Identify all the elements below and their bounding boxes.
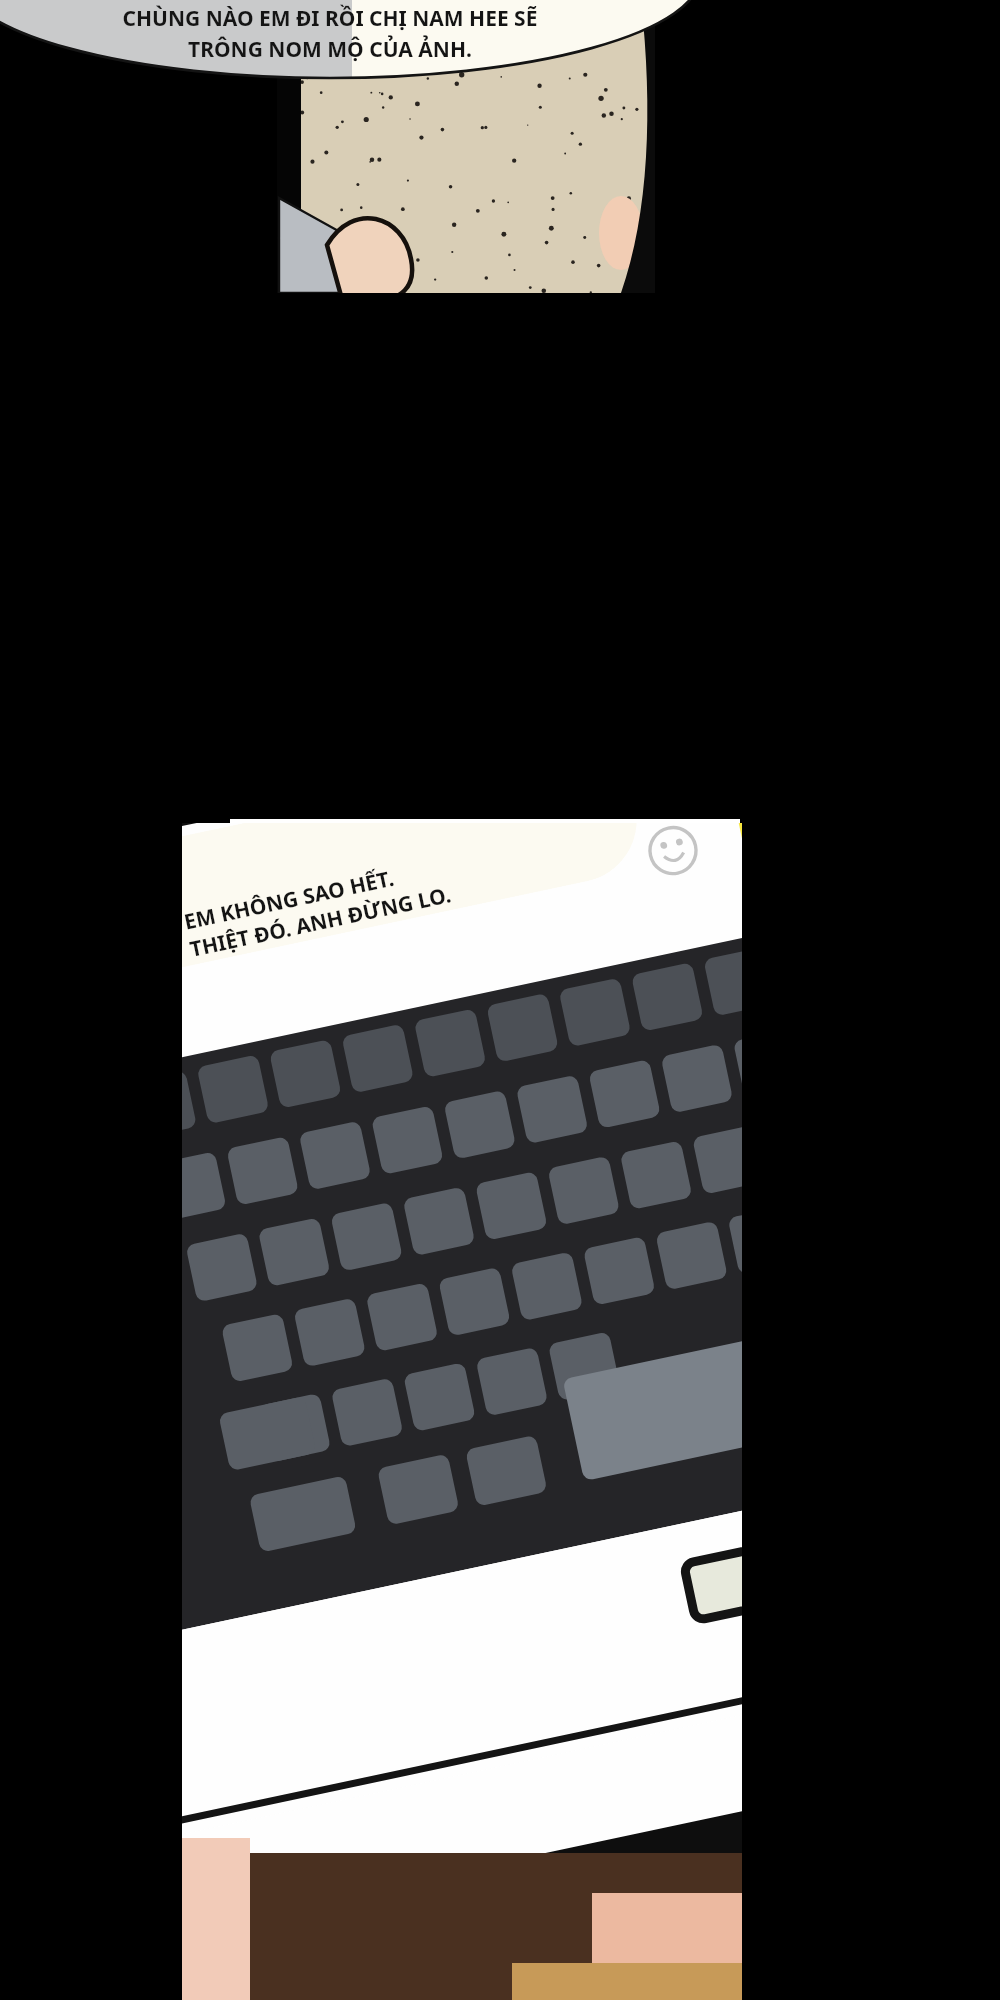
button[interactable] (0, 0, 1000, 2000)
